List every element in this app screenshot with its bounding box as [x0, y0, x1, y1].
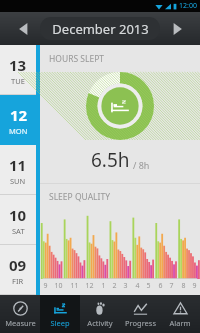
button[interactable]: Sleep: [40, 295, 80, 333]
button[interactable]: Progress: [120, 295, 160, 333]
staticText: December 2013: [52, 20, 149, 38]
staticText: 13: [9, 55, 27, 75]
staticText: 10: [54, 281, 63, 291]
staticText: 4: [135, 281, 140, 291]
staticText: 6.5h: [91, 147, 130, 173]
staticText: Measure: [5, 318, 36, 328]
button[interactable]: 09: [0, 245, 36, 295]
staticText: 12:00: [179, 1, 197, 11]
staticText: 6: [158, 281, 163, 291]
button[interactable]: Activity: [80, 295, 120, 333]
staticText: Alarm: [169, 318, 191, 328]
staticText: SUN: [10, 176, 26, 186]
button[interactable]: 10: [0, 195, 36, 245]
staticText: Progress: [125, 318, 156, 328]
button[interactable]: December 2013: [40, 17, 160, 40]
staticText: 09: [9, 255, 27, 275]
staticText: 9: [192, 281, 197, 291]
staticText: 12: [85, 281, 94, 291]
staticText: 1: [101, 281, 106, 291]
button[interactable]: Next month: [162, 16, 192, 42]
button[interactable]: 12: [0, 95, 36, 145]
staticText: TUE: [11, 76, 25, 86]
staticText: 2: [112, 281, 117, 291]
button[interactable]: 11: [0, 145, 36, 195]
staticText: 11: [9, 155, 27, 175]
staticText: Sleep: [50, 318, 70, 328]
button[interactable]: Previous month: [8, 16, 38, 42]
button[interactable]: Alarm: [160, 295, 200, 333]
staticText: SAT: [12, 226, 25, 236]
button[interactable]: 13: [0, 45, 36, 95]
staticText: MON: [9, 126, 28, 136]
staticText: 10: [9, 205, 27, 225]
staticText: SLEEP QUALITY: [49, 191, 110, 203]
staticText: 3: [123, 281, 128, 291]
staticText: / 8h: [133, 159, 150, 171]
staticText: 8: [181, 281, 186, 291]
staticText: HOURS SLEPT: [49, 53, 105, 65]
staticText: 12: [10, 105, 28, 125]
staticText: 11: [70, 281, 79, 291]
staticText: 7: [169, 281, 174, 291]
staticText: 5: [146, 281, 151, 291]
staticText: Activity: [87, 318, 113, 328]
staticText: 9: [43, 281, 48, 291]
staticText: FIR: [12, 276, 24, 286]
button[interactable]: Measure: [0, 295, 40, 333]
